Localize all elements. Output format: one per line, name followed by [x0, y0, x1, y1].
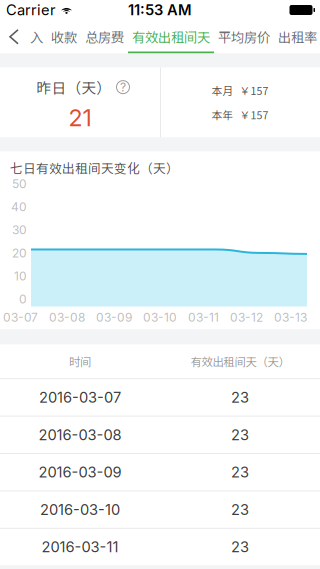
button[interactable]: 2016-03-09	[0, 454, 320, 490]
button[interactable]: 2016-03-07	[0, 379, 320, 416]
staticText: 有效出租间天（天）	[190, 353, 289, 369]
button[interactable]: 2016-03-10	[0, 491, 320, 528]
staticText: 21	[68, 104, 91, 132]
staticText: 七日有效出租间天变化（天）	[10, 158, 179, 177]
staticText: 0	[19, 292, 27, 306]
staticText: 2016-03-08	[38, 426, 121, 444]
staticText: 23	[231, 538, 249, 556]
staticText: 总房费	[85, 27, 124, 46]
button[interactable]: 总房费	[81, 20, 128, 53]
staticText: 2016-03-10	[40, 501, 120, 518]
staticText: ￥157	[239, 83, 268, 98]
staticText: 本年	[211, 107, 233, 122]
button[interactable]: 2016-03-11	[0, 529, 320, 565]
staticText: 03-09	[96, 310, 132, 325]
staticText: ￥157	[239, 107, 268, 122]
staticText: 平均房价	[218, 27, 270, 46]
staticText: 03-08	[49, 310, 85, 325]
staticText: 03-07	[3, 310, 38, 325]
staticText: 23	[231, 501, 249, 518]
staticText: 23	[231, 463, 249, 481]
button[interactable]: 有效出租间天	[128, 20, 214, 53]
staticText: ?	[120, 80, 126, 94]
staticText: Carrier	[6, 1, 56, 19]
button[interactable]: 出租率	[274, 20, 320, 53]
staticText: 23	[231, 426, 249, 444]
button[interactable]: 2016-03-08	[0, 417, 320, 453]
staticText: 30	[12, 223, 27, 237]
staticText: 收款	[51, 27, 77, 46]
staticText: 23	[231, 388, 249, 406]
button[interactable]: 收款	[47, 20, 81, 53]
staticText: 20	[12, 246, 27, 260]
staticText: 11:53 AM	[128, 1, 192, 19]
staticText: 03-11	[188, 310, 219, 325]
staticText: 40	[11, 200, 27, 214]
staticText: 2016-03-09	[38, 463, 121, 481]
staticText: 10	[14, 269, 27, 283]
staticText: 出租率	[278, 27, 317, 46]
staticText: 本月	[211, 83, 233, 98]
staticText: 时间	[69, 353, 91, 369]
staticText: 03-13	[274, 310, 307, 325]
staticText: 昨日（天）	[36, 76, 111, 98]
staticText: 2016-03-07	[39, 388, 121, 406]
button[interactable]: Back	[0, 20, 26, 53]
button[interactable]: 入	[26, 20, 47, 53]
staticText: 入	[30, 27, 43, 46]
staticText: 50	[12, 176, 27, 191]
button[interactable]: 平均房价	[214, 20, 274, 53]
staticText: 03-10	[143, 310, 177, 325]
staticText: 03-12	[230, 310, 263, 325]
staticText: 有效出租间天	[132, 27, 210, 46]
staticText: 2016-03-11	[41, 538, 118, 556]
